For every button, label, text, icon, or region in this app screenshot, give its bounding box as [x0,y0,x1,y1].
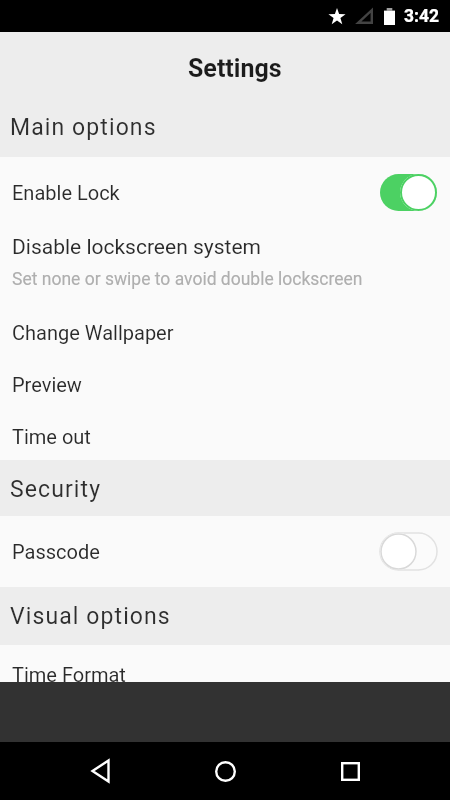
button[interactable] [197,743,253,799]
staticText: Visual options [10,603,171,630]
button[interactable]: Disable lockscreen system [0,228,450,306]
button[interactable]: Enable Lock [0,157,450,228]
staticText: Time Format [12,663,126,682]
button[interactable]: Time Format [0,645,450,682]
button[interactable] [322,743,378,799]
staticText: Security [10,476,102,503]
staticText: Set none or swipe to avoid double locksc… [12,269,363,290]
staticText: 3:42 [404,6,440,27]
staticText: Change Wallpaper [12,321,174,344]
button[interactable]: Passcode [0,516,450,587]
staticText: Disable lockscreen system [12,235,261,260]
staticText: Preview [12,373,82,396]
button[interactable]: Time out [0,410,450,460]
button[interactable]: Change Wallpaper [0,306,450,358]
staticText: Enable Lock [12,181,120,204]
staticText: Settings [188,54,282,83]
button[interactable]: Preview [0,358,450,410]
button[interactable] [72,743,128,799]
staticText: Time out [12,425,91,448]
staticText: Passcode [12,540,100,563]
staticText: Main options [10,114,157,141]
